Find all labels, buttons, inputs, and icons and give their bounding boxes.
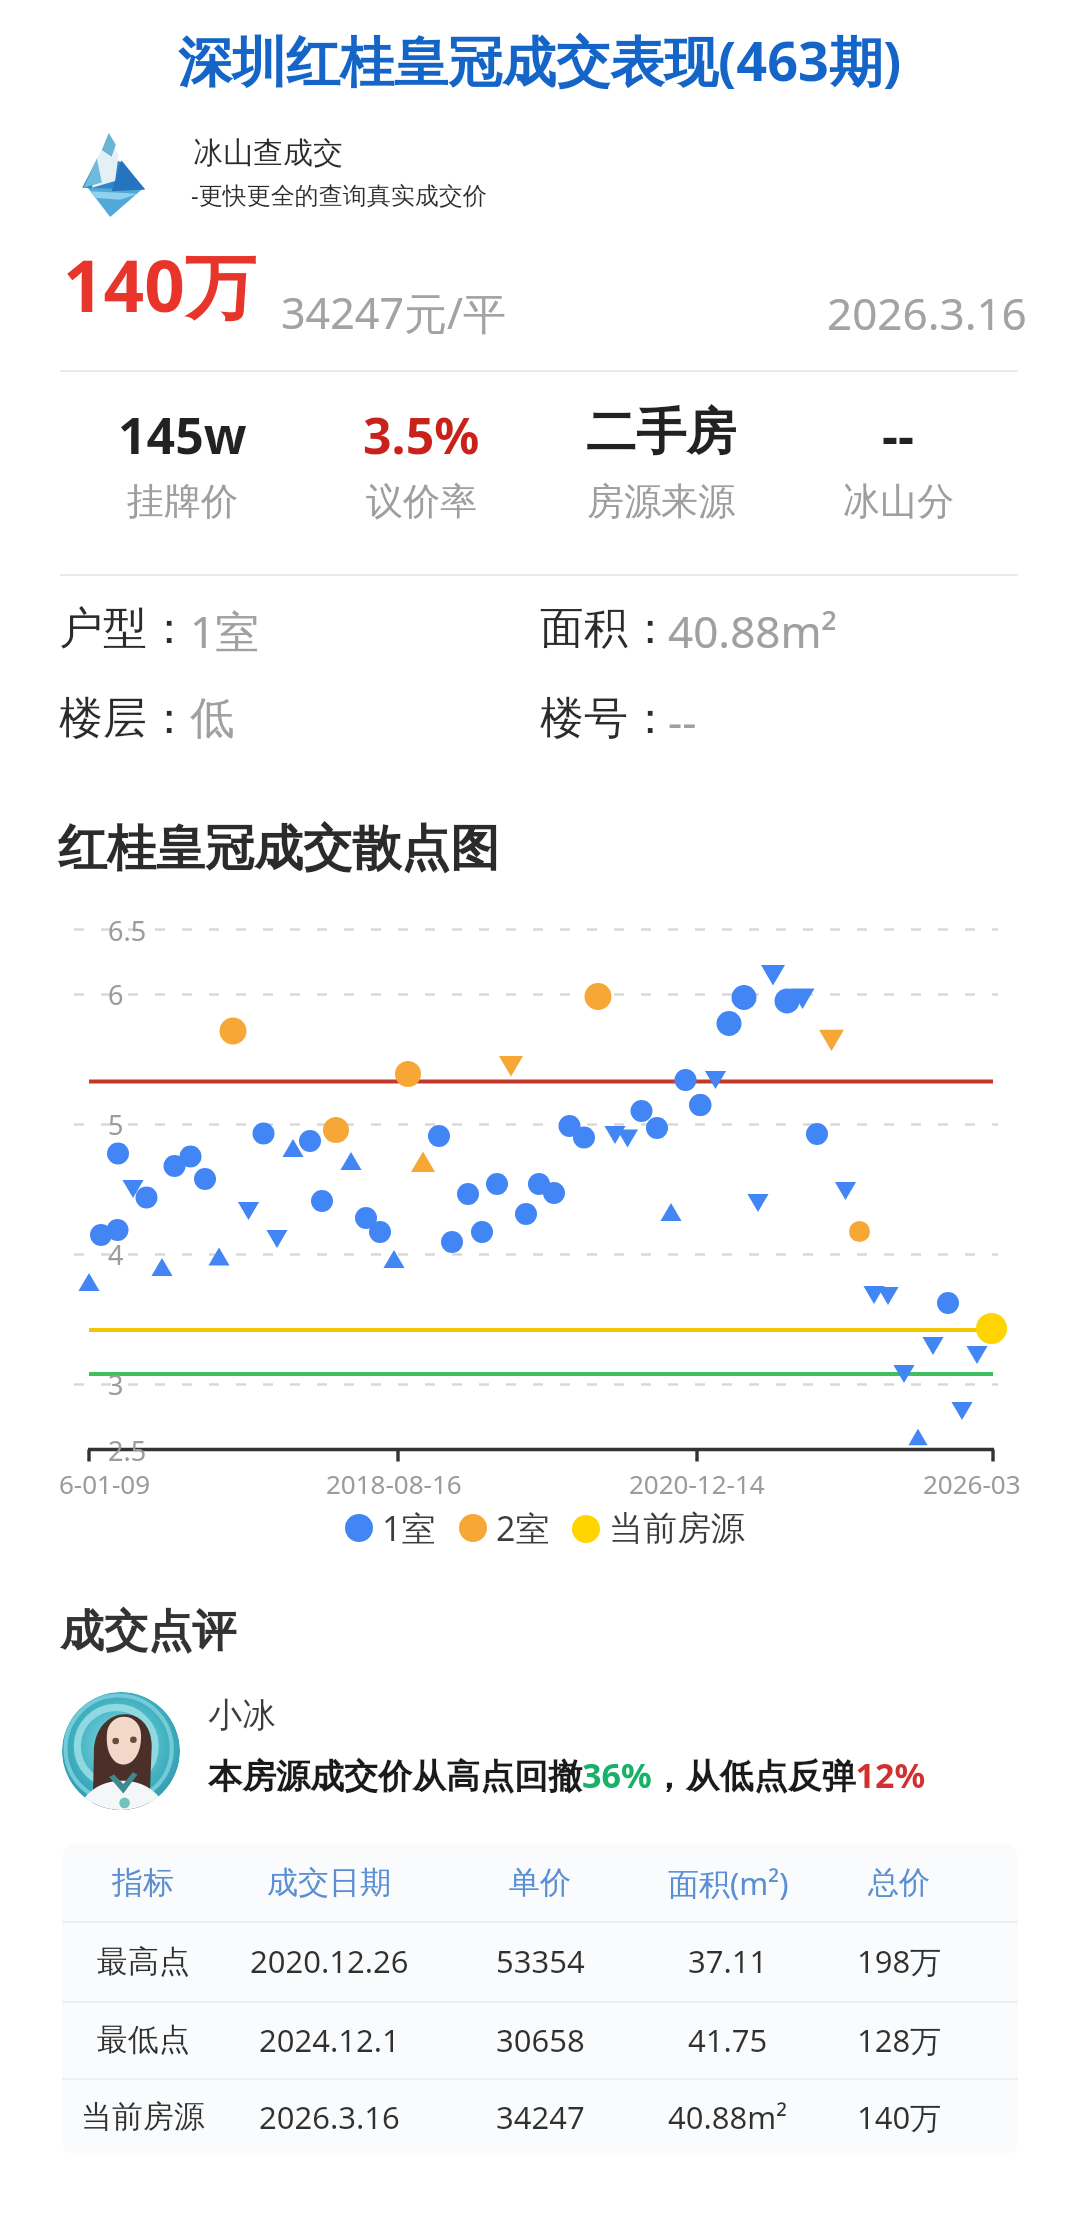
staticText: 40.88m² xyxy=(668,2096,788,2138)
button[interactable]: 小冰 头像 xyxy=(62,1692,180,1810)
staticText: 37.11 xyxy=(688,1940,768,1982)
staticText: 冰山查成交 xyxy=(193,134,343,172)
staticText: 深圳红桂皇冠成交表现(463期) xyxy=(178,23,902,97)
staticText: 53354 xyxy=(496,1940,585,1982)
staticText: 34247元/平 xyxy=(281,283,506,342)
staticText: -更快更全的查询真实成交价 xyxy=(191,178,487,211)
button[interactable] xyxy=(62,2078,1018,2155)
staticText: 小冰 xyxy=(208,1694,276,1737)
staticText: 2026.3.16 xyxy=(259,2096,400,2138)
staticText: 本房源成交价从高点回撤36%，从低点反弹12% xyxy=(208,1752,926,1798)
staticText: 6.5 xyxy=(108,912,147,949)
staticText: 户型： xyxy=(59,601,191,656)
staticText: 2018-08-16 xyxy=(326,1466,462,1501)
button[interactable]: 1室 xyxy=(345,1505,436,1551)
staticText: -- xyxy=(668,691,697,751)
staticText: 单价 xyxy=(509,1863,571,1902)
staticText: 红桂皇冠成交散点图 xyxy=(58,818,499,880)
staticText: 面积(m²) xyxy=(668,1862,789,1904)
staticText: 成交点评 xyxy=(60,1604,236,1659)
staticText: -- xyxy=(882,401,914,463)
staticText: 最高点 xyxy=(97,1942,190,1981)
staticText: 6 xyxy=(108,976,124,1013)
staticText: 3.5% xyxy=(363,401,480,463)
staticText: 2020.12.26 xyxy=(250,1940,409,1982)
button[interactable]: 2室 xyxy=(459,1505,550,1551)
button[interactable] xyxy=(62,1844,1018,1921)
staticText: 总价 xyxy=(868,1863,930,1902)
staticText: 41.75 xyxy=(688,2019,768,2061)
staticText: 楼号： xyxy=(540,691,672,746)
staticText: 3 xyxy=(108,1366,124,1403)
staticText: 140万 xyxy=(857,2096,942,2138)
button[interactable]: 当前房源 xyxy=(572,1507,745,1550)
staticText: 2024.12.1 xyxy=(259,2019,400,2061)
staticText: 最低点 xyxy=(97,2020,190,2059)
button[interactable] xyxy=(62,2001,1018,2078)
staticText: 6-01-09 xyxy=(59,1466,151,1501)
staticText: 1室 xyxy=(382,1505,436,1551)
button[interactable] xyxy=(62,1921,1018,2001)
staticText: 议价率 xyxy=(366,478,477,525)
staticText: 冰山分 xyxy=(843,478,954,525)
staticText: 指标 xyxy=(112,1863,174,1902)
staticText: 低 xyxy=(190,691,234,746)
staticText: 当前房源 xyxy=(609,1507,745,1550)
button[interactable] xyxy=(768,401,1028,529)
staticText: 2室 xyxy=(496,1505,550,1551)
staticText: 面积： xyxy=(540,601,672,656)
staticText: 140万 xyxy=(63,236,256,333)
button[interactable] xyxy=(531,401,791,529)
staticText: 1室 xyxy=(190,601,260,661)
staticText: 40.88m² xyxy=(668,601,838,661)
staticText: 198万 xyxy=(857,1940,942,1982)
staticText: 2020-12-14 xyxy=(629,1466,765,1501)
staticText: 成交日期 xyxy=(267,1863,391,1902)
staticText: 128万 xyxy=(857,2019,942,2061)
staticText: 145w xyxy=(118,401,247,463)
button[interactable] xyxy=(291,401,551,529)
staticText: 房源来源 xyxy=(587,478,735,525)
staticText: 二手房 xyxy=(586,401,736,463)
staticText: 2026.3.16 xyxy=(827,283,1027,343)
staticText: 当前房源 xyxy=(81,2097,205,2136)
button[interactable]: 冰山查成交 品牌 xyxy=(62,126,502,222)
button[interactable] xyxy=(52,401,312,529)
staticText: 楼层： xyxy=(59,691,191,746)
staticText: 2.5 xyxy=(108,1432,147,1469)
staticText: 34247 xyxy=(496,2096,585,2138)
staticText: 30658 xyxy=(496,2019,585,2061)
staticText: 2026-03 xyxy=(923,1466,1021,1501)
staticText: 4 xyxy=(108,1236,124,1273)
button[interactable]: 深圳红桂皇冠成交表现(463期) xyxy=(0,18,1080,102)
staticText: 挂牌价 xyxy=(127,478,238,525)
staticText: 5 xyxy=(108,1106,124,1143)
